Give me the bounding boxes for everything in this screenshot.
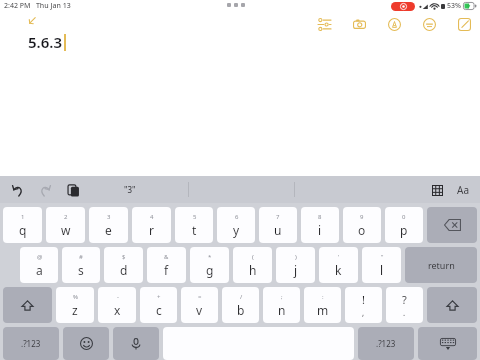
staticText: n [278,302,286,318]
staticText: ( [252,253,254,261]
staticText: / [240,293,243,301]
button[interactable]: # [62,247,100,283]
button[interactable]: Share [418,13,440,35]
button[interactable]: Screen recording [391,2,415,11]
button[interactable]: / [222,287,259,323]
button[interactable]: Markup [383,13,405,35]
staticText: 7 [276,213,280,221]
staticText: ; [281,293,283,301]
staticText: return [428,259,455,271]
button[interactable]: ) [276,247,315,283]
staticText: .?123 [376,338,396,349]
staticText: j [294,262,298,278]
staticText: ? [402,292,407,307]
staticText: * [208,253,212,261]
button[interactable]: Formatting [313,13,335,35]
staticText: x [114,302,121,318]
staticText: - [117,293,119,301]
staticText: 4 [150,213,154,221]
staticText: " [381,253,384,261]
button[interactable]: Backspace [427,207,477,243]
button[interactable]: * [190,247,229,283]
button[interactable]: Dictation [113,327,159,360]
staticText: p [400,222,408,238]
button[interactable]: 1 [3,207,42,243]
staticText: q [19,222,27,238]
staticText: .?123 [21,338,41,349]
button[interactable]: 7 [259,207,297,243]
button[interactable]: Hide keyboard [418,327,477,360]
button[interactable]: return [405,247,477,283]
button[interactable]: Paste [62,179,84,201]
button[interactable]: ! [345,287,382,323]
button[interactable]: = [181,287,218,323]
staticText: 5 [193,213,197,221]
staticText: 8 [318,213,322,221]
staticText: Aa [457,183,469,197]
button[interactable]: " [362,247,401,283]
staticText: @ [37,253,43,261]
button[interactable]: $ [104,247,143,283]
staticText: 0 [402,213,406,221]
button[interactable]: ' [319,247,358,283]
button[interactable]: & [147,247,186,283]
button[interactable]: ? [386,287,423,323]
staticText: . [403,307,406,318]
staticText: 53% [447,1,461,11]
button[interactable]: Aa [452,179,474,201]
staticText: o [358,222,366,238]
button[interactable]: @ [20,247,58,283]
button[interactable]: 3 [89,207,128,243]
staticText: $ [122,253,126,261]
staticText: v [196,302,203,318]
button[interactable]: 9 [343,207,381,243]
staticText: y [233,222,240,238]
staticText: m [317,302,329,318]
staticText: f [164,262,169,278]
button[interactable]: 2 [46,207,85,243]
staticText: % [73,293,78,301]
staticText: 1 [21,213,25,221]
button[interactable]: Shift [427,287,477,323]
staticText: b [237,302,245,318]
staticText: 6 [235,213,239,221]
staticText: r [149,222,154,238]
button[interactable]: % [56,287,94,323]
staticText: 5.6.3 [28,32,63,52]
staticText: k [335,262,342,278]
staticText: ' [338,253,340,261]
staticText: 9 [360,213,364,221]
button[interactable]: ; [263,287,300,323]
button[interactable]: New note [453,13,475,35]
button[interactable]: Insert table [426,179,448,201]
button[interactable]: ( [233,247,272,283]
button[interactable]: Emoji [63,327,109,360]
staticText: c [156,302,162,318]
button[interactable]: : [304,287,341,323]
staticText: 2:42 PM Thu Jan 13 [4,1,71,11]
staticText: t [192,222,197,238]
button[interactable]: - [98,287,136,323]
staticText: : [322,293,324,301]
button[interactable]: + [140,287,177,323]
button[interactable]: Insert photo [348,13,370,35]
button[interactable]: Shift [3,287,52,323]
button[interactable]: .?123 [358,327,414,360]
button[interactable]: 0 [385,207,423,243]
staticText: l [380,262,384,278]
staticText: 2 [64,213,68,221]
button[interactable]: 5 [175,207,213,243]
button[interactable]: Redo [34,179,56,201]
button[interactable]: 8 [301,207,339,243]
button[interactable]: Undo [6,179,28,201]
staticText: u [274,222,282,238]
button[interactable]: 6 [217,207,255,243]
staticText: g [206,262,214,278]
staticText: i [318,222,322,238]
staticText: z [72,302,78,318]
staticText: ) [295,253,297,261]
button[interactable]: 4 [132,207,171,243]
staticText: "3" [124,184,136,195]
button[interactable]: .?123 [3,327,59,360]
